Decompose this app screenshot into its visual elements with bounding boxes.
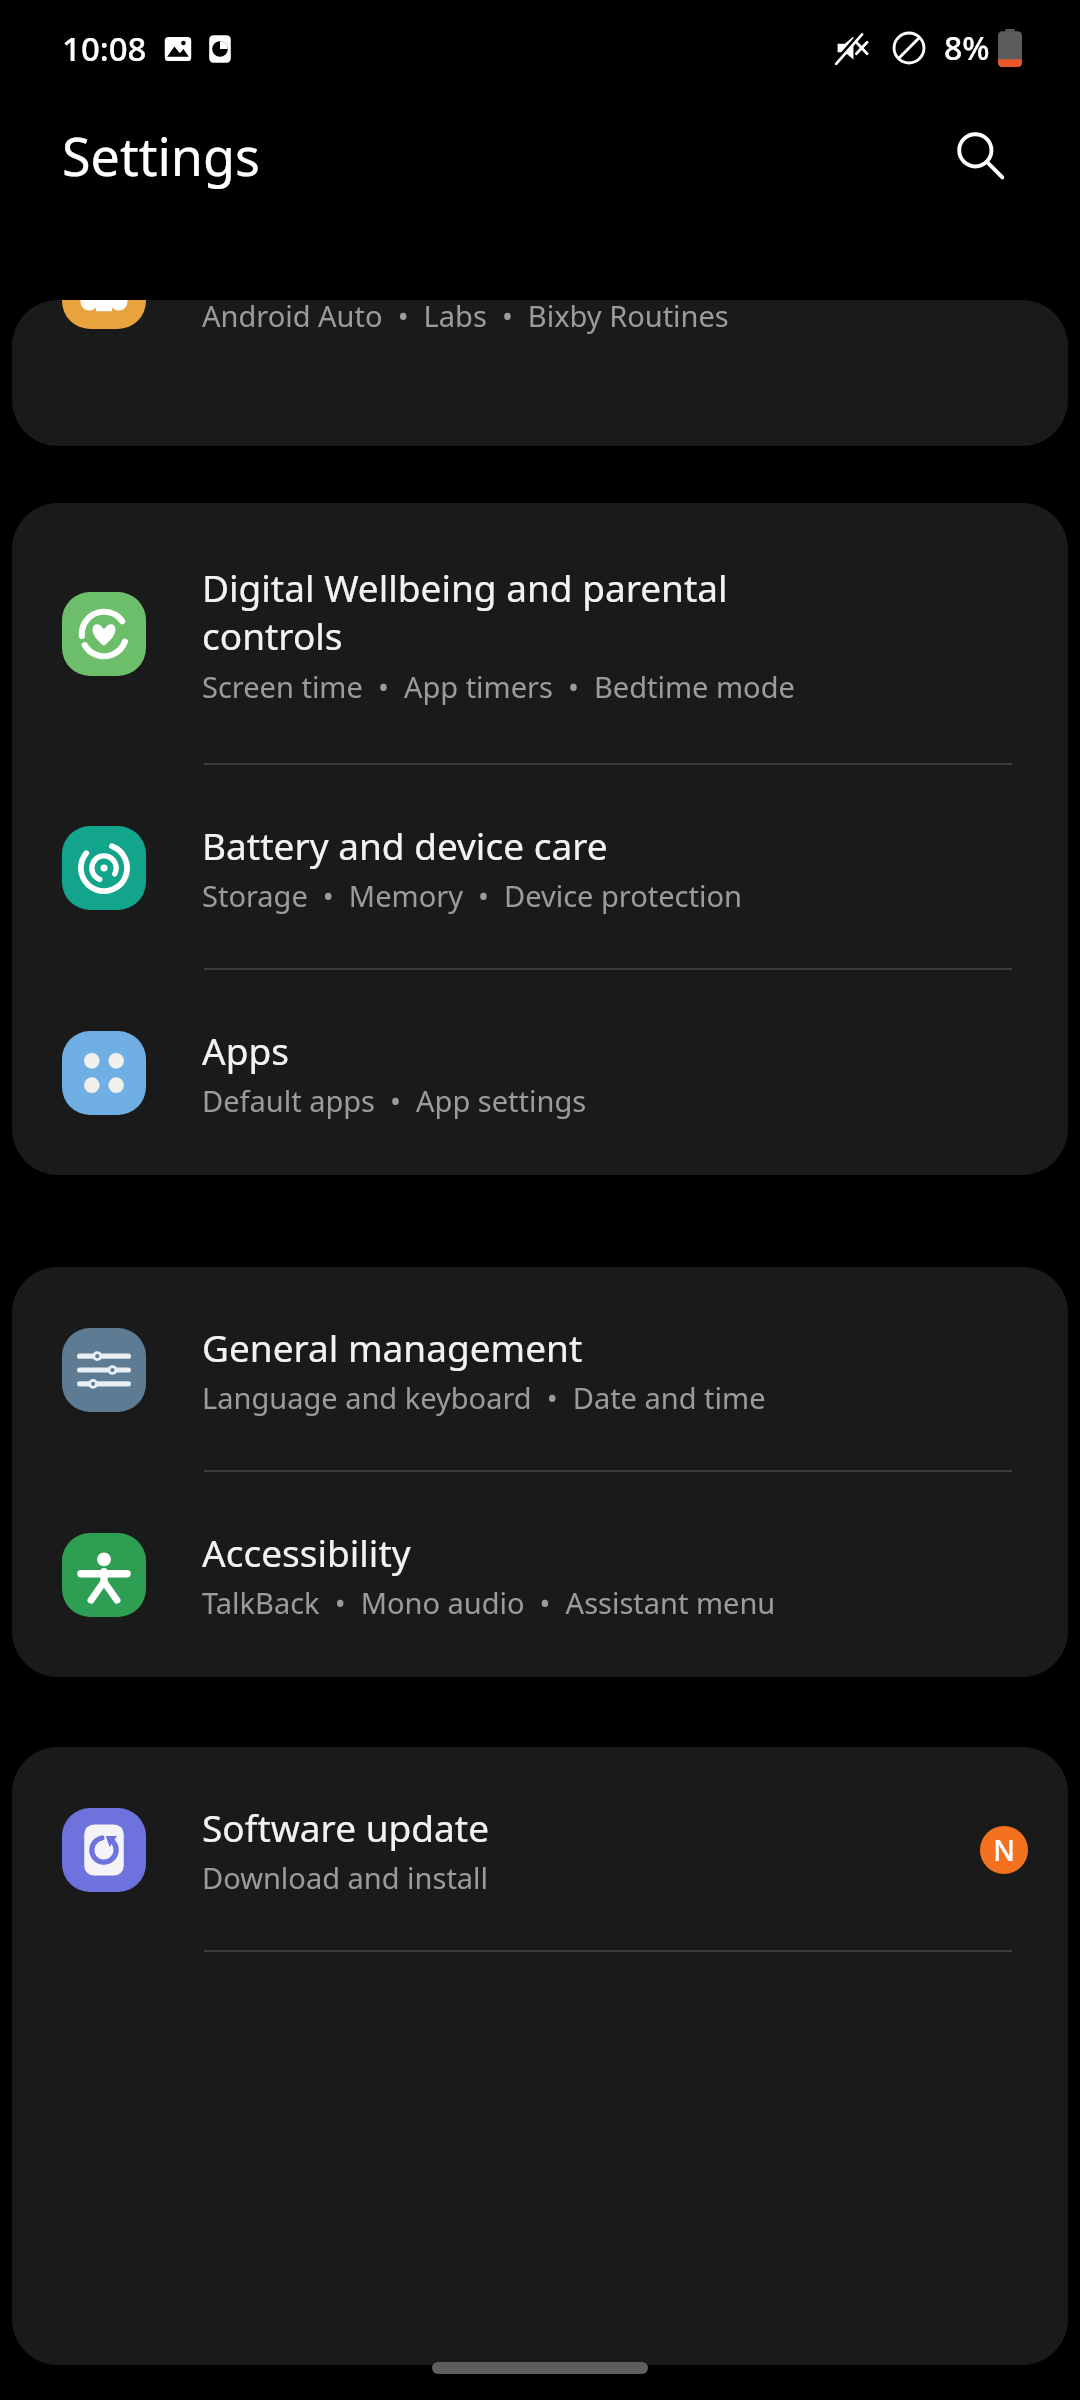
button[interactable]: Accessibility [12,1472,1068,1677]
staticText: Language and keyboard • Date and time [202,1378,766,1417]
staticText: Screen time • App timers • Bedtime mode [202,667,795,706]
staticText: Software update [202,1802,490,1852]
button[interactable]: Software update [12,1747,1068,1952]
staticText: Storage • Memory • Device protection [202,876,742,915]
staticText: 10:08 [62,26,147,71]
staticText: Default apps • App settings [202,1081,587,1120]
staticText: Apps [202,1025,289,1075]
button[interactable]: Apps [12,970,1068,1175]
staticText: 8% [944,26,990,70]
staticText: Android Auto • Labs • Bixby Routines [202,300,729,335]
staticText: General management [202,1322,583,1372]
staticText: N [993,1831,1015,1869]
staticText: TalkBack • Mono audio • Assistant menu [202,1583,776,1622]
button[interactable]: Search [932,107,1028,203]
staticText: Battery and device care [202,820,608,870]
button[interactable]: Digital Wellbeing and parental controls [12,503,1068,765]
staticText: Digital Wellbeing and parental controls [202,562,728,661]
button[interactable]: General management [12,1267,1068,1472]
button[interactable]: Battery and device care [12,765,1068,970]
button[interactable]: Advanced features [12,300,1068,360]
staticText: Settings [62,120,260,191]
staticText: Download and install [202,1858,489,1897]
staticText: Accessibility [202,1527,411,1577]
